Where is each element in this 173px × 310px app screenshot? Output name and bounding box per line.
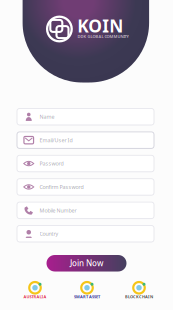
staticText: Email/User Id <box>39 137 72 144</box>
staticText: Mobile Number <box>39 207 76 214</box>
button[interactable]: Mobile Number <box>17 202 154 219</box>
staticText: DDK GLOBAL COMMUNITY <box>77 34 128 39</box>
button[interactable]: Password <box>17 155 154 172</box>
button[interactable]: Name <box>17 108 154 125</box>
button[interactable]: Confirm Password <box>17 179 154 195</box>
staticText: Join Now <box>70 258 103 268</box>
staticText: Password <box>39 160 63 167</box>
button[interactable]: Join Now <box>46 255 126 271</box>
staticText: KOIN <box>77 14 123 37</box>
staticText: Country <box>39 230 58 237</box>
staticText: Confirm Password <box>39 183 83 190</box>
button[interactable]: Email/User Id <box>17 132 154 148</box>
staticText: BLOCKCHAIN <box>125 294 153 299</box>
staticText: AUSTRALIA <box>23 294 46 299</box>
staticText: Name <box>39 113 54 120</box>
staticText: SMART ASSET <box>74 294 100 299</box>
button[interactable]: Country <box>17 225 154 242</box>
